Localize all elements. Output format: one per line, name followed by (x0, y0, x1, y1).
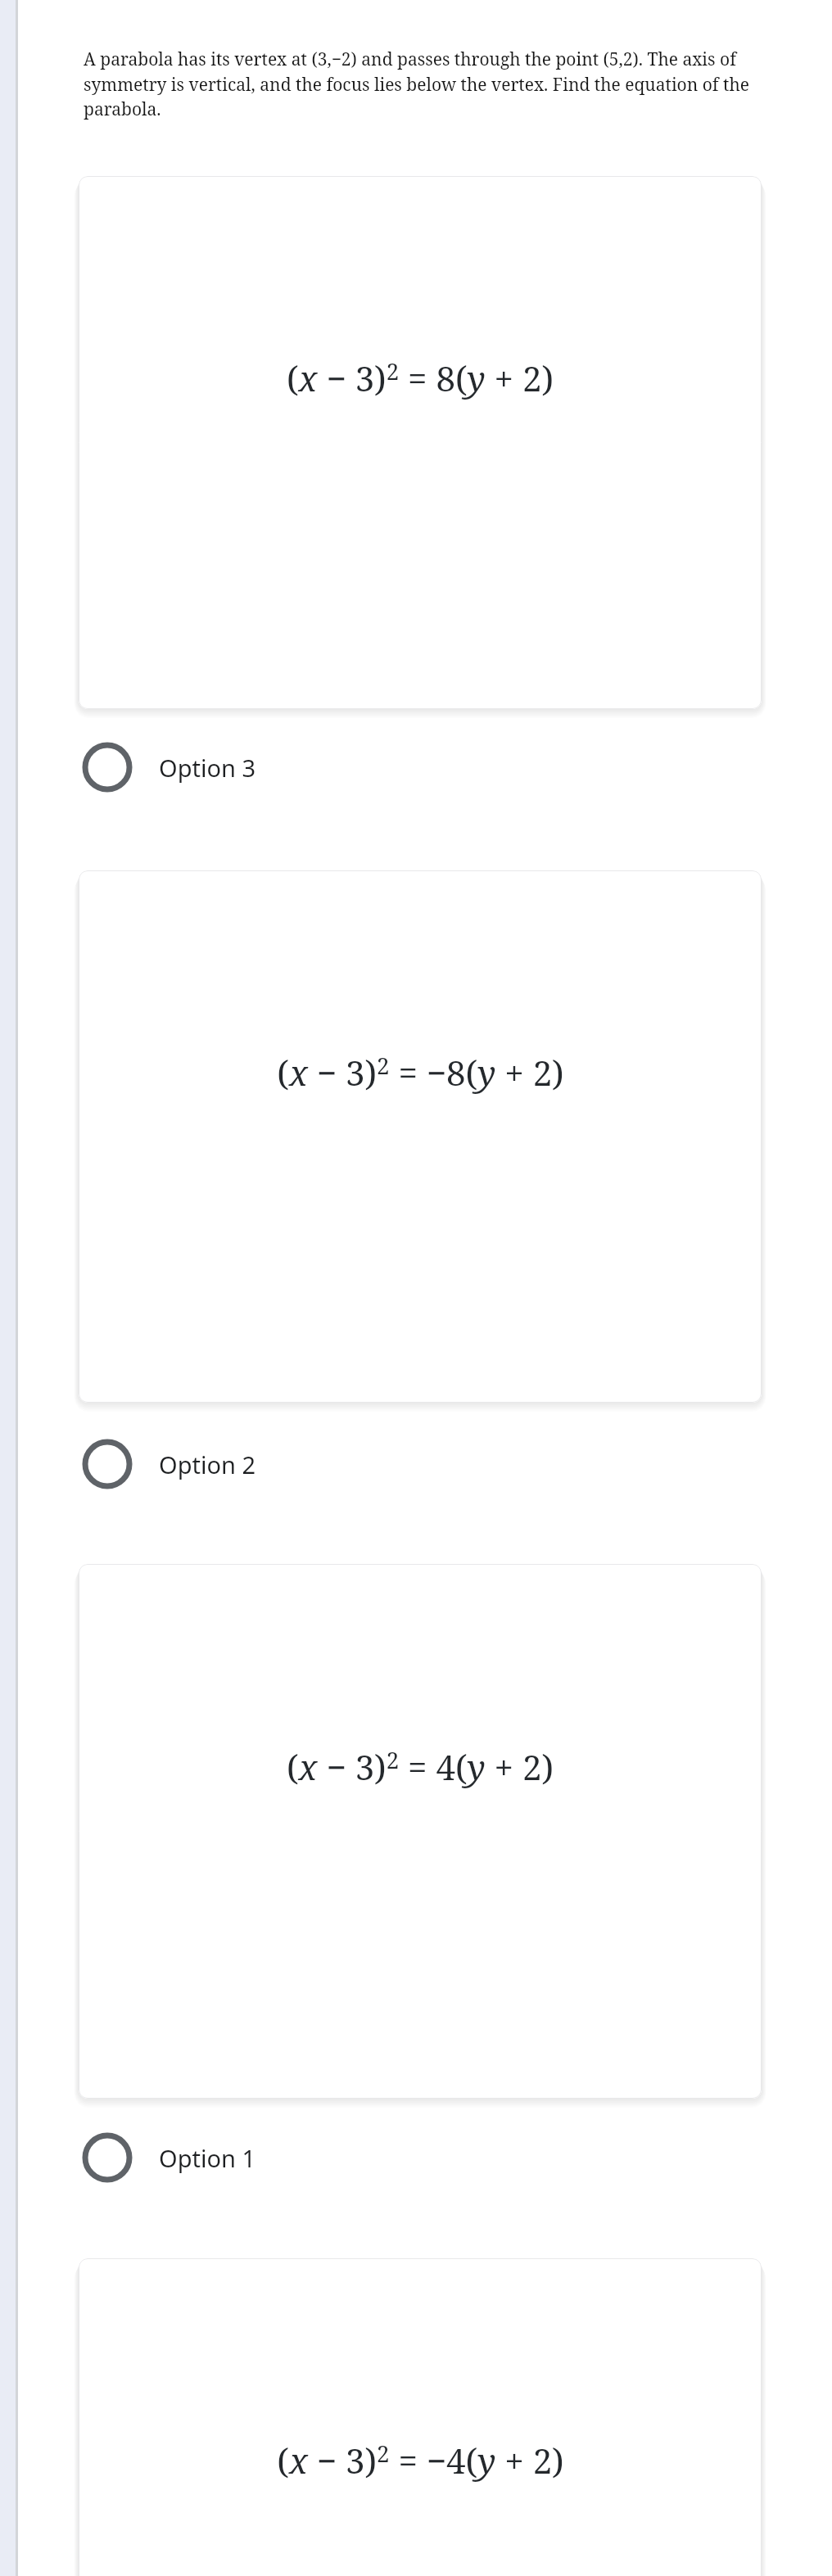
staticText: (x − 3)2 = 8(y + 2) (287, 355, 554, 401)
staticText: A parabola has its vertex at (3,−2) and … (84, 47, 771, 120)
button[interactable]: Option 2 (82, 1425, 426, 1503)
button[interactable]: Option 1 (82, 2118, 426, 2197)
staticText: (x − 3)2 = −4(y + 2) (277, 2437, 564, 2483)
button[interactable]: (x − 3)2 = −4(y + 2) (79, 2258, 762, 2576)
staticText: Option 1 (159, 2142, 256, 2174)
button[interactable]: Option 3 (82, 728, 426, 807)
staticText: Option 2 (159, 1448, 256, 1480)
staticText: (x − 3)2 = 4(y + 2) (287, 1743, 554, 1790)
other: Option 1 (82, 2132, 133, 2183)
other: Option 3 (82, 742, 133, 793)
other: Option 2 (82, 1439, 133, 1489)
staticText: Option 3 (159, 752, 256, 784)
button[interactable]: (x − 3)2 = 4(y + 2) (79, 1564, 762, 2099)
button[interactable]: (x − 3)2 = 8(y + 2) (79, 176, 762, 709)
staticText: (x − 3)2 = −8(y + 2) (277, 1049, 564, 1096)
button[interactable]: (x − 3)2 = −8(y + 2) (79, 870, 762, 1403)
